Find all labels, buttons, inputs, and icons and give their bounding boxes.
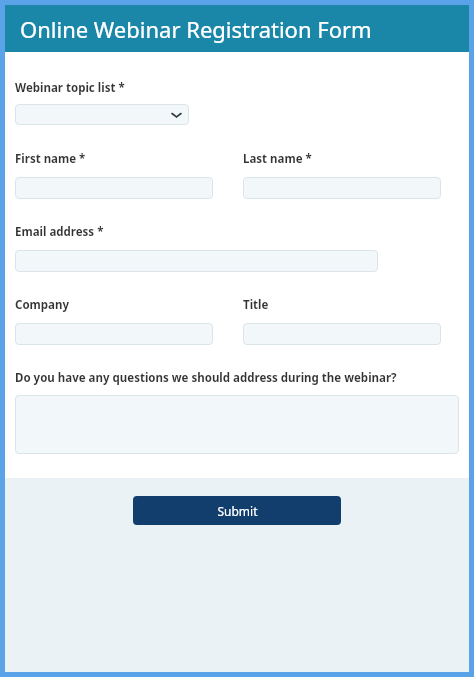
staticText: Last name * [243,151,312,167]
button[interactable] [243,323,441,345]
staticText: Online Webinar Registration Form [20,14,372,44]
button[interactable] [15,250,378,272]
staticText: Company [15,297,69,313]
staticText: Do you have any questions we should addr… [15,370,397,386]
staticText: Title [243,297,269,313]
button[interactable]: Submit [133,496,341,525]
button[interactable] [15,104,189,125]
button[interactable] [15,323,213,345]
button[interactable] [15,395,459,454]
button[interactable] [15,177,213,199]
button[interactable] [243,177,441,199]
staticText: Submit [217,503,258,519]
staticText: Email address * [15,224,104,240]
staticText: Webinar topic list * [15,80,125,96]
staticText: First name * [15,151,86,167]
